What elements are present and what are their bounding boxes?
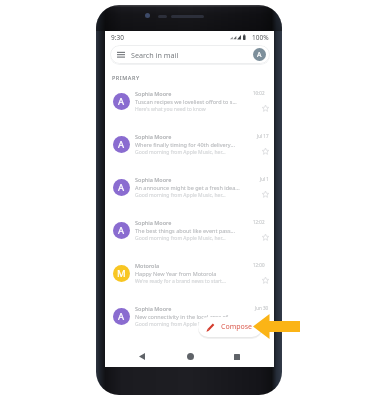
button[interactable]: A: [105, 84, 274, 127]
staticText: Good morning from Apple Music...: [135, 321, 216, 328]
staticText: Sophia Moore: [135, 133, 172, 140]
staticText: Jun 30: [255, 305, 269, 311]
staticText: Sophia Moore: [135, 305, 172, 312]
staticText: Jul 17: [257, 133, 269, 139]
staticText: 100%: [252, 33, 269, 42]
staticText: 10:02 AM: [253, 90, 269, 96]
staticText: A: [118, 95, 125, 108]
button[interactable]: M: [105, 256, 274, 299]
button[interactable]: Home: [179, 346, 201, 367]
button[interactable]: A: [105, 170, 274, 213]
button[interactable]: Account: [253, 48, 266, 61]
staticText: Good morning from Apple Music, her...: [135, 235, 226, 242]
button[interactable]: Search in mail: [110, 45, 270, 64]
staticText: Jul 1: [260, 176, 269, 182]
button[interactable]: A: [105, 127, 274, 170]
staticText: Compose: [221, 322, 253, 332]
staticText: Sophia Moore: [135, 90, 172, 97]
staticText: 12:02 AM: [253, 219, 269, 225]
staticText: M: [117, 267, 126, 280]
button[interactable]: Back: [131, 346, 153, 367]
button[interactable]: A: [105, 299, 274, 342]
staticText: Happy New Year from Motorola: [135, 270, 217, 277]
staticText: Sophia Moore: [135, 219, 172, 226]
staticText: New connectivity in the local area of...: [135, 313, 233, 320]
staticText: A: [118, 310, 125, 323]
staticText: Where finally timing for 40th delivery..…: [135, 141, 235, 148]
staticText: A: [118, 138, 125, 151]
staticText: A: [257, 50, 262, 60]
staticText: An announce might be get a fresh idea...: [135, 184, 240, 191]
staticText: Here's what you need to know: [135, 106, 206, 113]
button[interactable]: A: [105, 213, 274, 256]
button[interactable]: Compose: [198, 317, 262, 337]
staticText: Tuscan recipes we loveliest offord to s.…: [135, 98, 237, 105]
staticText: 12:00 AM: [253, 262, 269, 268]
staticText: Good morning from Apple Music, her...: [135, 149, 226, 156]
staticText: The best things about like event pass...: [135, 227, 235, 234]
staticText: 9:30: [111, 33, 124, 42]
staticText: Search in mail: [131, 50, 179, 60]
staticText: PRIMARY: [112, 74, 140, 81]
button[interactable]: Recent apps: [226, 346, 248, 367]
staticText: A: [118, 181, 125, 194]
staticText: Good morning from Apple Music, her...: [135, 192, 226, 199]
staticText: Sophia Moore: [135, 176, 172, 183]
staticText: Motorola: [135, 262, 160, 269]
staticText: We're ready for a brand news to start...: [135, 278, 226, 285]
staticText: A: [118, 224, 125, 237]
